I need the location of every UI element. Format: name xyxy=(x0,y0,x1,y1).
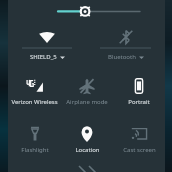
staticText: Cast screen xyxy=(123,146,156,154)
staticText: Flashlight xyxy=(21,146,49,154)
button[interactable]: SHIELD_5 xyxy=(8,26,86,68)
button[interactable]: Bluetooth xyxy=(86,26,165,68)
button[interactable]: Location xyxy=(61,122,113,160)
button[interactable]: Flashlight xyxy=(8,122,61,160)
staticText: Airplane mode xyxy=(66,98,108,106)
staticText: Verizon Wireless xyxy=(11,98,58,106)
button[interactable]: Brightness xyxy=(8,0,165,22)
button[interactable]: Cast screen xyxy=(113,122,165,160)
staticText: SHIELD_5 xyxy=(30,53,57,61)
button[interactable]: Verizon Wireless xyxy=(8,74,61,112)
staticText: Portrait xyxy=(128,98,150,106)
button[interactable]: Airplane mode xyxy=(61,74,113,112)
button[interactable]: Portrait xyxy=(113,74,165,112)
staticText: Location xyxy=(75,146,100,154)
staticText: Bluetooth xyxy=(108,53,136,61)
